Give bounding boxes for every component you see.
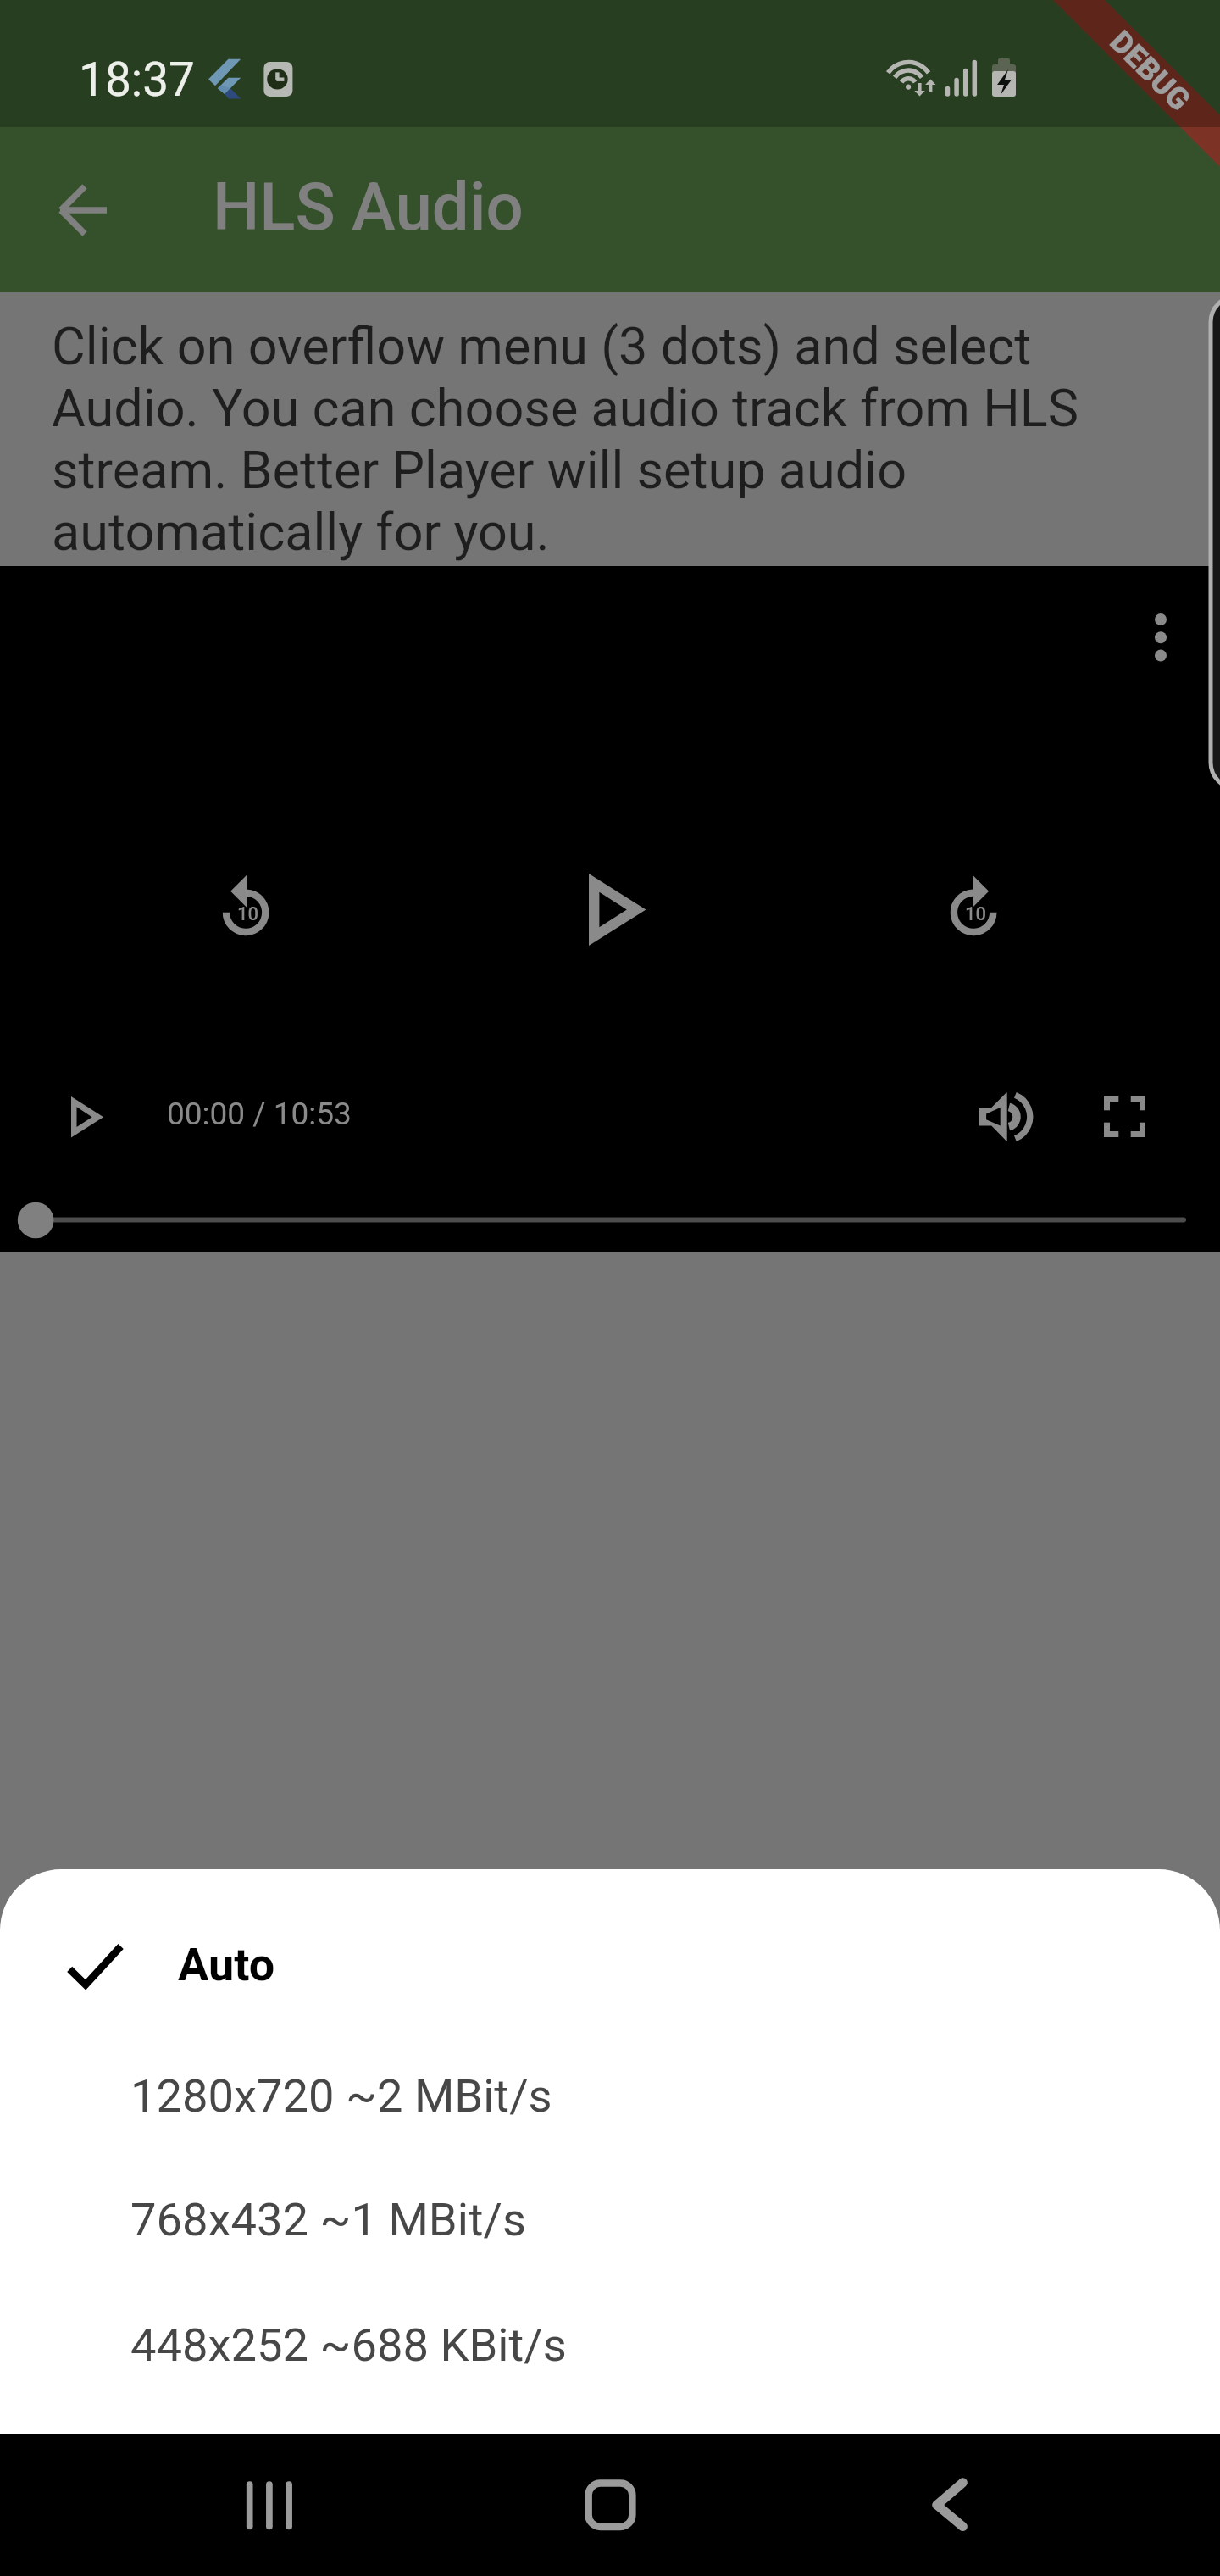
staticText: 18:37 [79,53,195,107]
button[interactable]: Fullscreen [1104,1096,1146,1138]
staticText: 448x252 ~688 KBit/s [130,2318,567,2373]
staticText: DEBUG [1065,0,1220,155]
button[interactable]: Forward 10 seconds [923,861,1026,964]
button[interactable] [0,2176,1220,2301]
staticText: 10 [237,903,259,925]
staticText: 00:00 / 10:53 [167,1096,352,1132]
button[interactable]: More options [1123,581,1198,656]
staticText: 10 [965,903,987,925]
button[interactable]: Home [559,2456,661,2557]
staticText: HLS Audio [213,169,524,246]
staticText: Auto [178,1938,275,1991]
button[interactable] [0,2051,1220,2176]
button[interactable]: Back [898,2456,1000,2557]
staticText: 1280x720 ~2 MBit/s [130,2069,552,2124]
button[interactable]: Play [589,874,646,947]
button[interactable]: Back [41,168,125,253]
button[interactable]: Rewind 10 seconds [195,861,298,964]
staticText: 768x432 ~1 MBit/s [130,2193,527,2247]
button[interactable] [0,2301,1220,2427]
staticText: Click on overflow menu (3 dots) and sele… [52,315,1145,563]
button[interactable]: Recent apps [219,2456,320,2557]
button[interactable]: Mute [979,1092,1035,1148]
button[interactable] [0,1905,1220,2032]
button[interactable]: Play [71,1096,104,1138]
